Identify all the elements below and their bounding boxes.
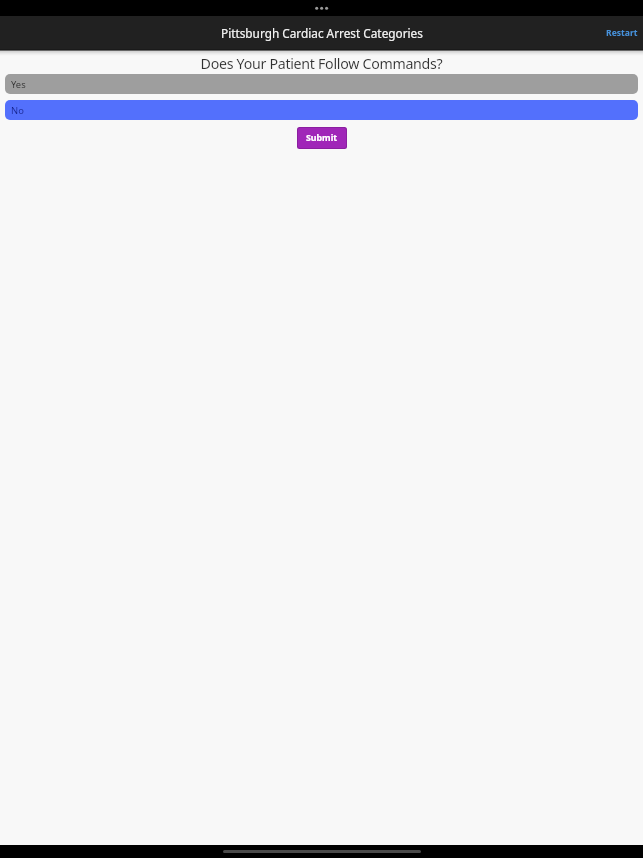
staticText: Does Your Patient Follow Commands? [0,54,643,73]
staticText: Pittsburgh Cardiac Arrest Categories [221,25,423,41]
button[interactable]: More options [302,0,342,16]
staticText: Restart [606,27,638,39]
staticText: No [11,104,24,117]
button[interactable]: Home [223,845,421,858]
button[interactable]: Yes [5,74,638,94]
button[interactable]: Restart [598,22,643,44]
staticText: Yes [11,78,26,91]
staticText: Submit [306,132,338,144]
button[interactable]: No [5,100,638,120]
button[interactable]: Submit [298,128,346,148]
